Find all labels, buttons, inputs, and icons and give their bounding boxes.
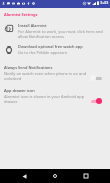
staticText: For Alarmist to work, you must click her…	[18, 29, 103, 39]
staticText: Go to the Pebble appstore	[18, 50, 68, 55]
staticText: Install Alarmist	[18, 23, 47, 28]
button[interactable]: Alarmist Settings	[0, 8, 110, 21]
button[interactable]: App drawer icon	[0, 87, 110, 106]
button[interactable]: Home	[48, 169, 62, 183]
button[interactable]: Download optional free watch app	[0, 43, 110, 62]
staticText: App drawer icon	[4, 88, 35, 93]
staticText: Notify on watch even when phone is on an…	[4, 71, 88, 81]
staticText: Alarmist icon is shown in your Android a…	[4, 94, 88, 104]
button[interactable]: Back	[17, 169, 31, 183]
staticText: Always Send Notifications	[4, 65, 53, 70]
staticText: Download optional free watch app	[18, 44, 83, 49]
button[interactable]: Recents	[79, 169, 93, 183]
button[interactable]: Always Send Notifications	[0, 64, 110, 83]
button[interactable]: Toggle off	[90, 75, 102, 81]
staticText: 3:43	[100, 0, 109, 6]
button[interactable]: Toggle on	[90, 98, 102, 104]
staticText: Alarmist Settings	[4, 12, 38, 17]
button[interactable]: Install Alarmist	[0, 22, 110, 41]
